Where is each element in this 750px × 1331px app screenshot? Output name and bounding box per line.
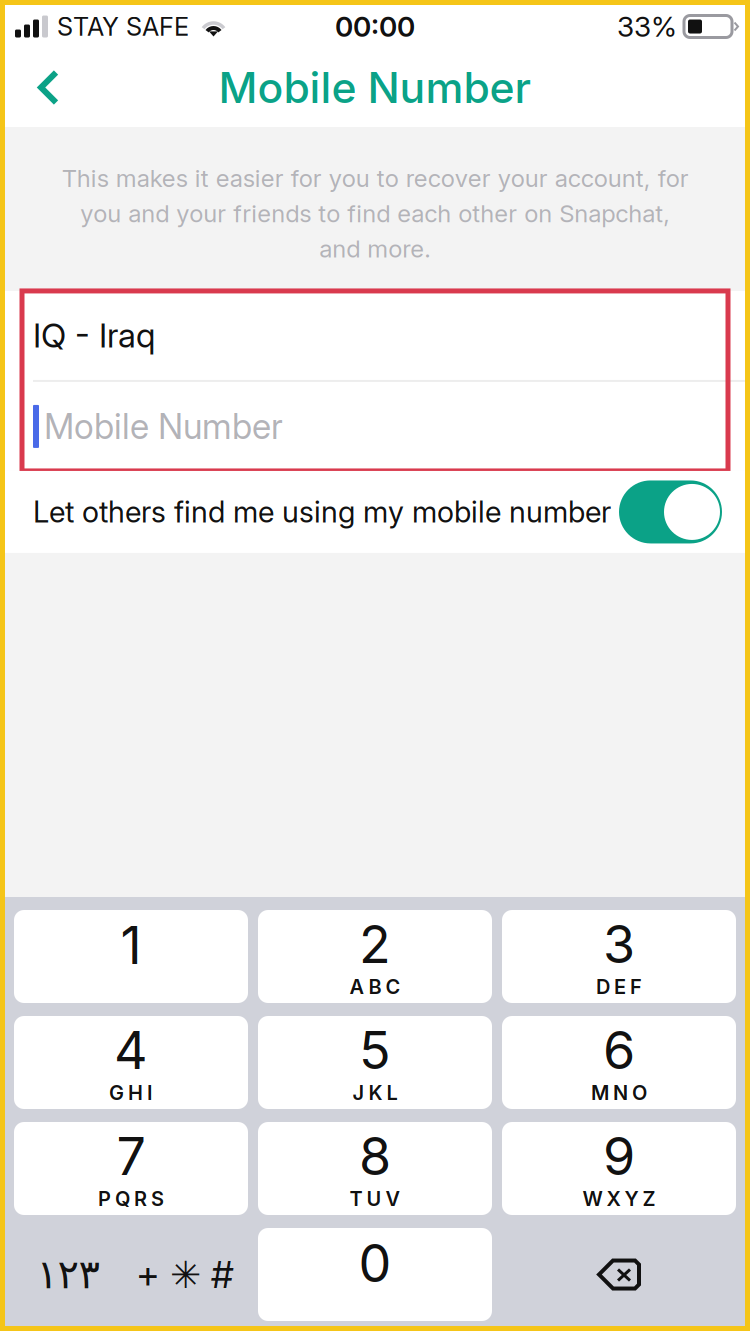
button[interactable]: 1 — [14, 910, 248, 1003]
staticText: Mobile Number — [44, 406, 283, 447]
staticText: 4 — [114, 1019, 148, 1081]
staticText: This makes it easier for you to recover … — [61, 164, 688, 263]
staticText: 2 — [359, 913, 391, 975]
staticText: 7 — [116, 1125, 145, 1187]
staticText: 1 — [120, 914, 141, 976]
staticText: ABC — [349, 975, 400, 998]
staticText: IQ - Iraq — [33, 316, 155, 355]
staticText: MNO — [591, 1081, 647, 1104]
button[interactable]: 6 — [502, 1016, 736, 1109]
staticText: 0 — [358, 1232, 391, 1294]
button[interactable]: 9 — [502, 1122, 736, 1215]
button[interactable]: 3 — [502, 910, 736, 1003]
staticText: Mobile Number — [218, 62, 531, 113]
button[interactable]: + ✳ # — [122, 1228, 248, 1320]
staticText: JKL — [352, 1081, 397, 1104]
button[interactable]: Let others find me using my mobile numbe… — [5, 471, 745, 553]
staticText: DEF — [596, 975, 642, 998]
button[interactable]: IQ - Iraq — [5, 291, 745, 380]
button[interactable]: ١٢٣ — [14, 1228, 122, 1320]
button[interactable]: 4 — [14, 1016, 248, 1109]
button[interactable]: 5 — [258, 1016, 492, 1109]
button[interactable]: 0 — [258, 1228, 492, 1321]
staticText: + ✳ # — [136, 1252, 234, 1296]
staticText: STAY SAFE — [57, 12, 189, 41]
staticText: WXYZ — [582, 1187, 655, 1210]
staticText: GHI — [109, 1081, 153, 1104]
staticText: Let others find me using my mobile numbe… — [33, 495, 611, 529]
staticText: 9 — [603, 1125, 635, 1187]
staticText: PQRS — [98, 1187, 164, 1210]
staticText: 5 — [359, 1019, 391, 1081]
staticText: TUV — [349, 1187, 400, 1210]
button[interactable]: Mobile Number — [5, 382, 745, 471]
button[interactable]: Back — [5, 48, 82, 127]
button[interactable]: 8 — [258, 1122, 492, 1215]
staticText: ١٢٣ — [36, 1252, 99, 1297]
button[interactable]: Delete — [502, 1228, 736, 1320]
staticText: 00:00 — [335, 10, 415, 43]
button[interactable]: 7 — [14, 1122, 248, 1215]
button[interactable]: 2 — [258, 910, 492, 1003]
staticText: 6 — [603, 1019, 635, 1081]
staticText: 8 — [359, 1125, 391, 1187]
staticText: 33% — [617, 10, 677, 43]
staticText: 3 — [603, 913, 635, 975]
